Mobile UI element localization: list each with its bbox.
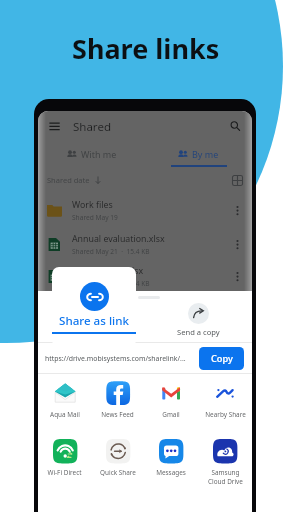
button[interactable]: Quick Share bbox=[91, 432, 144, 490]
staticText: Shared date bbox=[47, 175, 90, 185]
button[interactable]: More options bbox=[232, 239, 243, 250]
staticText: https://drive.mobisystems.com/sharelink/… bbox=[45, 354, 186, 363]
button[interactable]: By me bbox=[145, 142, 252, 167]
button[interactable]: With me bbox=[38, 142, 145, 167]
button[interactable]: More options bbox=[232, 205, 243, 216]
button[interactable]: Send a copy bbox=[145, 303, 252, 337]
staticText: With me bbox=[81, 148, 117, 160]
staticText: Aqua Mail bbox=[50, 410, 80, 419]
staticText: Share links bbox=[72, 30, 220, 67]
button[interactable]: Menu bbox=[49, 121, 60, 132]
button[interactable]: Annual evaluation.xlsx bbox=[47, 227, 243, 261]
staticText: Expenses list.xlsx bbox=[72, 265, 144, 277]
button[interactable]: Aqua Mail bbox=[38, 374, 91, 432]
staticText: Shared May 21 · 15.4 KB bbox=[72, 247, 150, 256]
staticText: Samsung Cloud Drive bbox=[208, 468, 243, 486]
button[interactable]: Grid view bbox=[232, 175, 243, 186]
staticText: Annual evaluation.xlsx bbox=[72, 233, 165, 245]
button[interactable]: Samsung Cloud Drive bbox=[198, 432, 252, 490]
button[interactable]: Wi-Fi Direct bbox=[38, 432, 91, 490]
button[interactable]: Shared date bbox=[47, 175, 102, 185]
button[interactable]: Share as link bbox=[52, 267, 136, 347]
staticText: News Feed bbox=[101, 410, 134, 419]
staticText: Messages bbox=[156, 468, 186, 477]
staticText: Share as link bbox=[59, 313, 129, 329]
staticText: Work files bbox=[72, 199, 113, 211]
staticText: Quick Share bbox=[100, 468, 136, 477]
button[interactable]: More options bbox=[232, 271, 243, 282]
button[interactable]: Copy bbox=[199, 347, 244, 370]
button[interactable]: News Feed bbox=[91, 374, 144, 432]
button[interactable]: Expenses list.xlsx bbox=[47, 261, 243, 291]
staticText: Shared May 20 · 11.4 KB bbox=[72, 279, 150, 288]
button[interactable]: Work files bbox=[47, 193, 243, 227]
button[interactable]: Nearby Share bbox=[198, 374, 252, 432]
staticText: Gmail bbox=[162, 410, 180, 419]
button[interactable]: Search bbox=[230, 121, 241, 132]
staticText: Wi-Fi Direct bbox=[47, 468, 82, 477]
staticText: Shared bbox=[73, 119, 111, 135]
staticText: Copy bbox=[211, 352, 233, 365]
staticText: Nearby Share bbox=[205, 410, 246, 419]
staticText: Shared May 19 bbox=[72, 213, 118, 222]
button[interactable]: Gmail bbox=[144, 374, 198, 432]
button[interactable]: Messages bbox=[144, 432, 198, 490]
staticText: By me bbox=[192, 148, 219, 160]
staticText: Send a copy bbox=[177, 327, 220, 337]
